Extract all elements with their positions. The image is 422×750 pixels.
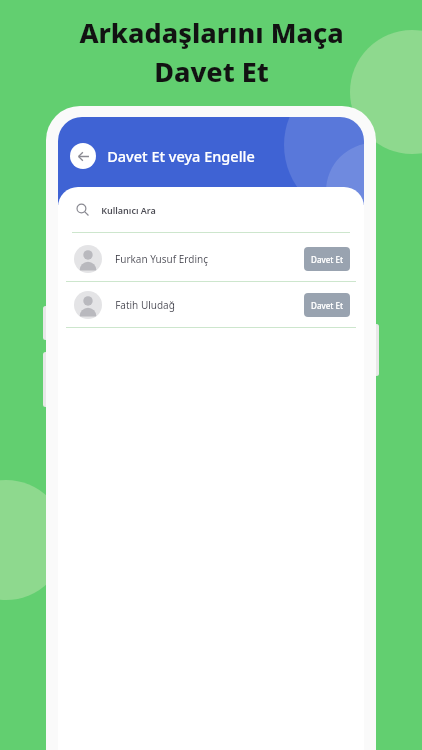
button[interactable]: Back [70,143,96,169]
staticText: Davet Et [311,254,343,265]
button[interactable]: Furkan Yusuf Erdinç [58,236,364,281]
button[interactable]: Fatih Uludağ [58,282,364,327]
staticText: Davet Et [154,53,269,90]
button[interactable]: Kullanıcı Ara [72,199,350,233]
button[interactable]: Davet Et [304,293,350,317]
staticText: Davet Et [311,300,343,311]
staticText: Arkadaşlarını Maça [79,14,344,51]
button[interactable]: Davet Et [304,247,350,271]
staticText: Fatih Uludağ [115,298,175,312]
staticText: Davet Et veya Engelle [107,146,255,166]
staticText: Kullanıcı Ara [101,204,156,216]
staticText: Furkan Yusuf Erdinç [115,252,208,266]
